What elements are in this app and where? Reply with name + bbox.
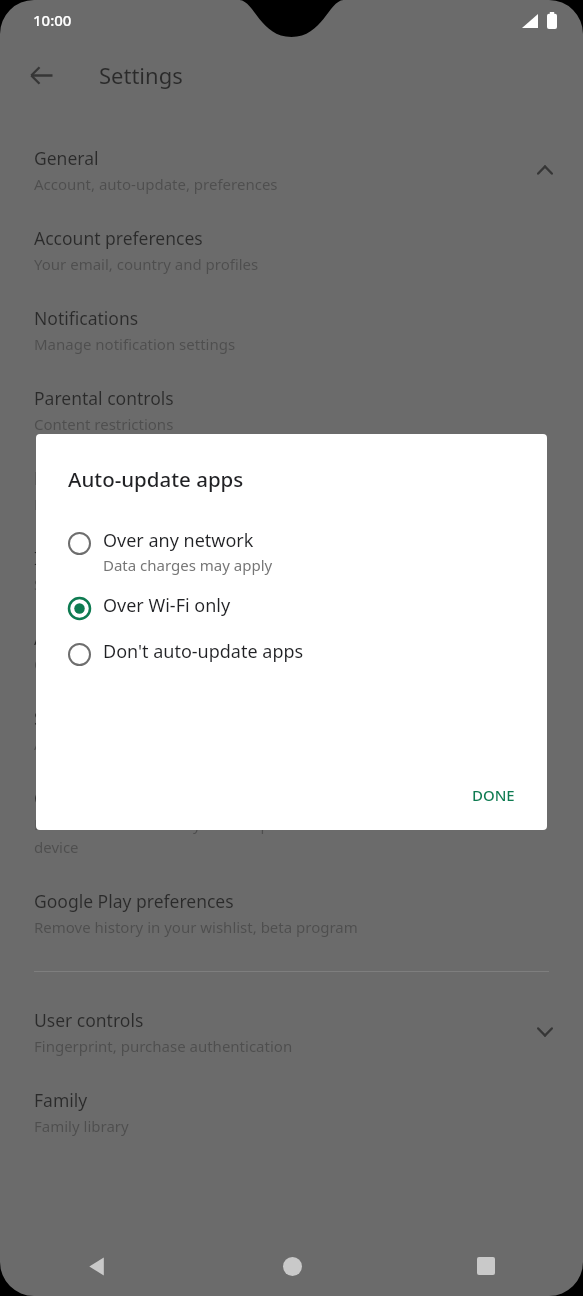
staticText: Auto-update apps xyxy=(34,626,182,650)
staticText: Family xyxy=(34,1088,88,1112)
staticText: Clear local search history xyxy=(34,786,239,810)
staticText: Don't auto-update apps xyxy=(103,639,304,664)
staticText: Account, auto-update, preferences xyxy=(34,174,278,194)
button[interactable]: Back xyxy=(17,51,65,99)
button[interactable]: Google Play preferences xyxy=(0,877,583,957)
button[interactable]: Home xyxy=(195,1236,389,1296)
button[interactable]: System update xyxy=(0,694,583,774)
staticText: System update xyxy=(34,706,157,730)
button[interactable]: Auto-update apps xyxy=(0,614,583,694)
staticText: Settings xyxy=(99,60,183,90)
staticText: Remove searches that you have performed … xyxy=(34,814,405,857)
button[interactable]: Over any network xyxy=(36,519,547,584)
staticText: Remove history in your wishlist, beta pr… xyxy=(34,917,358,937)
button[interactable]: Family xyxy=(0,1076,583,1156)
button[interactable]: Parental controls xyxy=(0,374,583,454)
staticText: Data charges may apply xyxy=(103,555,273,575)
staticText: Notifications xyxy=(34,306,139,330)
staticText: Share apps locally xyxy=(34,574,161,594)
staticText: Your email, country and profiles xyxy=(34,254,259,274)
staticText: Require authentication xyxy=(34,494,196,514)
button[interactable]: User controls xyxy=(0,996,583,1076)
staticText: Internal app sharing xyxy=(34,546,203,570)
staticText: Over Wi-Fi only xyxy=(34,654,140,674)
button[interactable]: Don't auto-update apps xyxy=(36,630,547,676)
button[interactable]: Purchase verification xyxy=(0,454,583,534)
button[interactable]: Notifications xyxy=(0,294,583,374)
staticText: Over any network xyxy=(103,528,254,553)
button[interactable]: DONE xyxy=(458,776,529,814)
button[interactable]: Recent apps xyxy=(389,1236,583,1296)
staticText: 10:00 xyxy=(33,10,72,30)
button[interactable]: General xyxy=(0,134,583,214)
button[interactable]: Over Wi-Fi only xyxy=(36,584,547,630)
button[interactable]: Clear local search history xyxy=(0,774,583,877)
staticText: Parental controls xyxy=(34,386,174,410)
button[interactable]: Account preferences xyxy=(0,214,583,294)
staticText: DONE xyxy=(472,785,515,805)
button[interactable]: Back xyxy=(0,1236,195,1296)
staticText: Over Wi-Fi only xyxy=(103,593,231,618)
staticText: Account preferences xyxy=(34,226,203,250)
staticText: Family library xyxy=(34,1116,129,1136)
staticText: Fingerprint, purchase authentication xyxy=(34,1036,293,1056)
staticText: Auto-update apps xyxy=(68,465,244,493)
staticText: Content restrictions xyxy=(34,414,174,434)
staticText: Purchase verification xyxy=(34,466,206,490)
staticText: User controls xyxy=(34,1008,144,1032)
button[interactable]: Internal app sharing xyxy=(0,534,583,614)
staticText: Android security patch level xyxy=(34,734,229,754)
staticText: General xyxy=(34,146,99,170)
staticText: Manage notification settings xyxy=(34,334,236,354)
staticText: Google Play preferences xyxy=(34,889,234,913)
